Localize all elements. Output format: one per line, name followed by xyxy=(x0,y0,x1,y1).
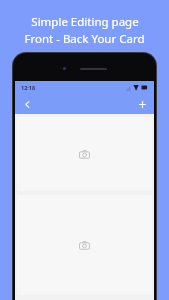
staticText: Front - Back Your Card xyxy=(24,31,145,47)
button[interactable]: Back xyxy=(20,97,34,111)
staticText: 12:18 xyxy=(21,84,36,91)
button[interactable]: Add xyxy=(135,97,149,111)
staticText: Simple Editing page xyxy=(31,14,139,30)
